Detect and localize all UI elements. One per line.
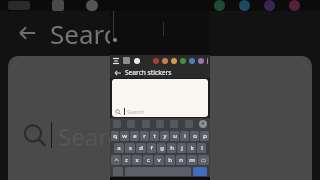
button[interactable]: Shift (111, 155, 121, 165)
button[interactable]: Color 6 (189, 58, 195, 64)
button[interactable]: Keyboard tool 6 (199, 120, 207, 128)
button[interactable]: Symbols (113, 167, 123, 176)
staticText: c (147, 156, 150, 164)
button[interactable]: Color 4 (171, 58, 177, 64)
staticText: u (173, 132, 177, 140)
button[interactable]: Keyboard tool 2 (142, 120, 150, 128)
button[interactable]: Menu (8, 1, 30, 10)
button[interactable]: l (197, 143, 206, 153)
button[interactable]: Color 8 (207, 58, 208, 64)
button[interactable]: g (157, 143, 166, 153)
staticText: v (157, 156, 161, 164)
button[interactable]: a (114, 143, 124, 153)
button[interactable]: h (167, 143, 176, 153)
button[interactable]: j (177, 143, 186, 153)
staticText: Search (50, 16, 133, 50)
button[interactable]: n (176, 155, 186, 165)
button[interactable]: x (132, 155, 142, 165)
button[interactable]: Color 3 (162, 58, 168, 64)
button[interactable]: t (150, 131, 159, 141)
staticText: h (170, 144, 174, 152)
button[interactable]: d (136, 143, 146, 153)
button[interactable]: v (154, 155, 164, 165)
staticText: n (179, 156, 183, 164)
button[interactable]: e (130, 131, 139, 141)
staticText: w (122, 132, 127, 140)
staticText: p (203, 132, 207, 140)
staticText: j (181, 144, 183, 152)
staticText: b (168, 156, 172, 164)
staticText: Search (127, 108, 145, 115)
button[interactable]: Search (112, 106, 208, 117)
button[interactable]: Enter (193, 167, 207, 176)
staticText: Search (58, 120, 134, 153)
button[interactable]: Shape (123, 57, 130, 64)
staticText: x (135, 156, 139, 164)
staticText: y (163, 132, 167, 140)
button[interactable]: u (170, 131, 179, 141)
button[interactable]: o (190, 131, 199, 141)
button[interactable]: Keyboard tool 5 (185, 120, 193, 128)
button[interactable]: z (122, 155, 131, 165)
staticText: o (193, 132, 197, 140)
staticText: a (117, 144, 121, 152)
button[interactable]: Color 7 (198, 58, 204, 64)
button[interactable]: Keyboard tool 1 (127, 120, 135, 128)
staticText: f (150, 144, 153, 152)
button[interactable]: Text style (112, 57, 120, 65)
button[interactable]: Color 0 (134, 58, 140, 64)
button[interactable]: Backspace (198, 155, 209, 165)
staticText: r (143, 132, 146, 140)
button[interactable]: c (143, 155, 153, 165)
staticText: d (139, 144, 143, 152)
button[interactable]: m (187, 155, 197, 165)
staticText: i (184, 132, 186, 140)
button[interactable]: w (120, 131, 129, 141)
staticText: g (160, 144, 164, 152)
button[interactable]: Color 5 (180, 58, 186, 64)
button[interactable]: p (200, 131, 209, 141)
staticText: z (125, 156, 128, 164)
staticText: s (129, 144, 132, 152)
staticText: q (113, 132, 117, 140)
button[interactable]: Back (10, 16, 44, 50)
button[interactable]: r (140, 131, 149, 141)
button[interactable]: Keyboard tool 3 (156, 120, 164, 128)
button[interactable]: Back (113, 68, 122, 77)
button[interactable]: App (52, 0, 64, 11)
staticText: k (190, 144, 194, 152)
button[interactable]: b (165, 155, 175, 165)
staticText: e (133, 132, 137, 140)
button[interactable]: Keyboard tool 4 (170, 120, 178, 128)
staticText: l (201, 144, 203, 152)
staticText: m (189, 156, 195, 164)
button[interactable]: Search (22, 118, 134, 154)
button[interactable]: i (180, 131, 189, 141)
button[interactable]: Keyboard tool 0 (113, 120, 121, 128)
button[interactable]: q (111, 131, 119, 141)
button[interactable]: f (147, 143, 156, 153)
staticText: t (153, 132, 156, 140)
staticText: Search stickers (125, 68, 172, 77)
button[interactable]: s (125, 143, 135, 153)
button[interactable]: y (160, 131, 169, 141)
button[interactable]: k (187, 143, 196, 153)
button[interactable]: Color 2 (153, 58, 159, 64)
